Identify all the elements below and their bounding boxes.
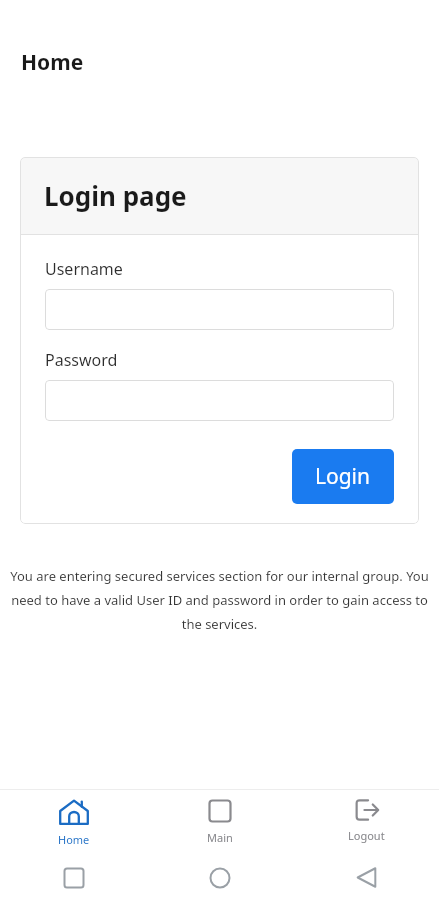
staticText: Logout <box>348 828 385 843</box>
staticText: Login <box>315 462 371 491</box>
staticText: Login page <box>44 178 187 213</box>
button[interactable]: Login <box>292 449 394 504</box>
staticText: Home <box>58 832 90 847</box>
staticText: Main <box>207 830 233 845</box>
button[interactable]: Recents <box>0 855 147 900</box>
button[interactable]: Home <box>0 790 147 855</box>
button[interactable] <box>45 289 394 330</box>
button[interactable] <box>45 380 394 421</box>
staticText: Home <box>21 48 84 77</box>
button[interactable]: Main <box>147 790 293 855</box>
button[interactable]: Home <box>147 855 293 900</box>
button[interactable]: Logout <box>293 790 439 855</box>
staticText: You are entering secured services sectio… <box>4 567 435 633</box>
button[interactable]: Back <box>293 855 439 900</box>
staticText: Username <box>45 258 123 280</box>
staticText: Password <box>45 349 118 371</box>
